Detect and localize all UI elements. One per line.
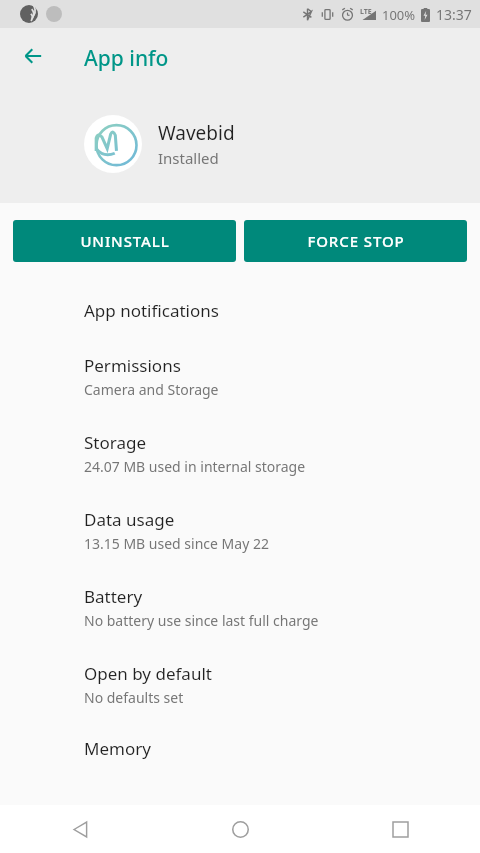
staticText: Permissions — [84, 354, 181, 377]
button[interactable]: FORCE STOP — [244, 220, 467, 262]
button[interactable]: Battery — [0, 569, 480, 646]
button[interactable]: Recent apps — [376, 805, 424, 853]
button[interactable]: Open by default — [0, 646, 480, 723]
staticText: Storage — [84, 431, 147, 454]
staticText: UNINSTALL — [80, 231, 170, 251]
staticText: 100% — [382, 6, 416, 24]
staticText: 13.15 MB used since May 22 — [84, 534, 269, 553]
staticText: Camera and Storage — [84, 380, 219, 399]
staticText: 24.07 MB used in internal storage — [84, 457, 306, 476]
staticText: Open by default — [84, 662, 212, 685]
button[interactable]: Permissions — [0, 338, 480, 415]
staticText: No battery use since last full charge — [84, 611, 319, 630]
button[interactable]: Back — [9, 32, 57, 80]
staticText: 13:37 — [436, 5, 472, 24]
button[interactable]: App notifications — [0, 283, 480, 338]
staticText: LTE — [360, 7, 372, 17]
button[interactable]: Storage — [0, 415, 480, 492]
button[interactable]: Memory — [0, 723, 480, 745]
staticText: Memory — [84, 737, 151, 759]
staticText: App info — [84, 44, 169, 73]
staticText: Battery — [84, 585, 143, 608]
staticText: Installed — [158, 148, 219, 168]
button[interactable]: UNINSTALL — [13, 220, 236, 262]
button[interactable]: Back — [56, 805, 104, 853]
button[interactable]: Data usage — [0, 492, 480, 569]
button[interactable]: Home — [216, 805, 264, 853]
staticText: Data usage — [84, 508, 175, 531]
staticText: FORCE STOP — [307, 231, 405, 251]
staticText: No defaults set — [84, 688, 184, 707]
staticText: Wavebid — [158, 120, 235, 146]
staticText: App notifications — [84, 299, 219, 322]
